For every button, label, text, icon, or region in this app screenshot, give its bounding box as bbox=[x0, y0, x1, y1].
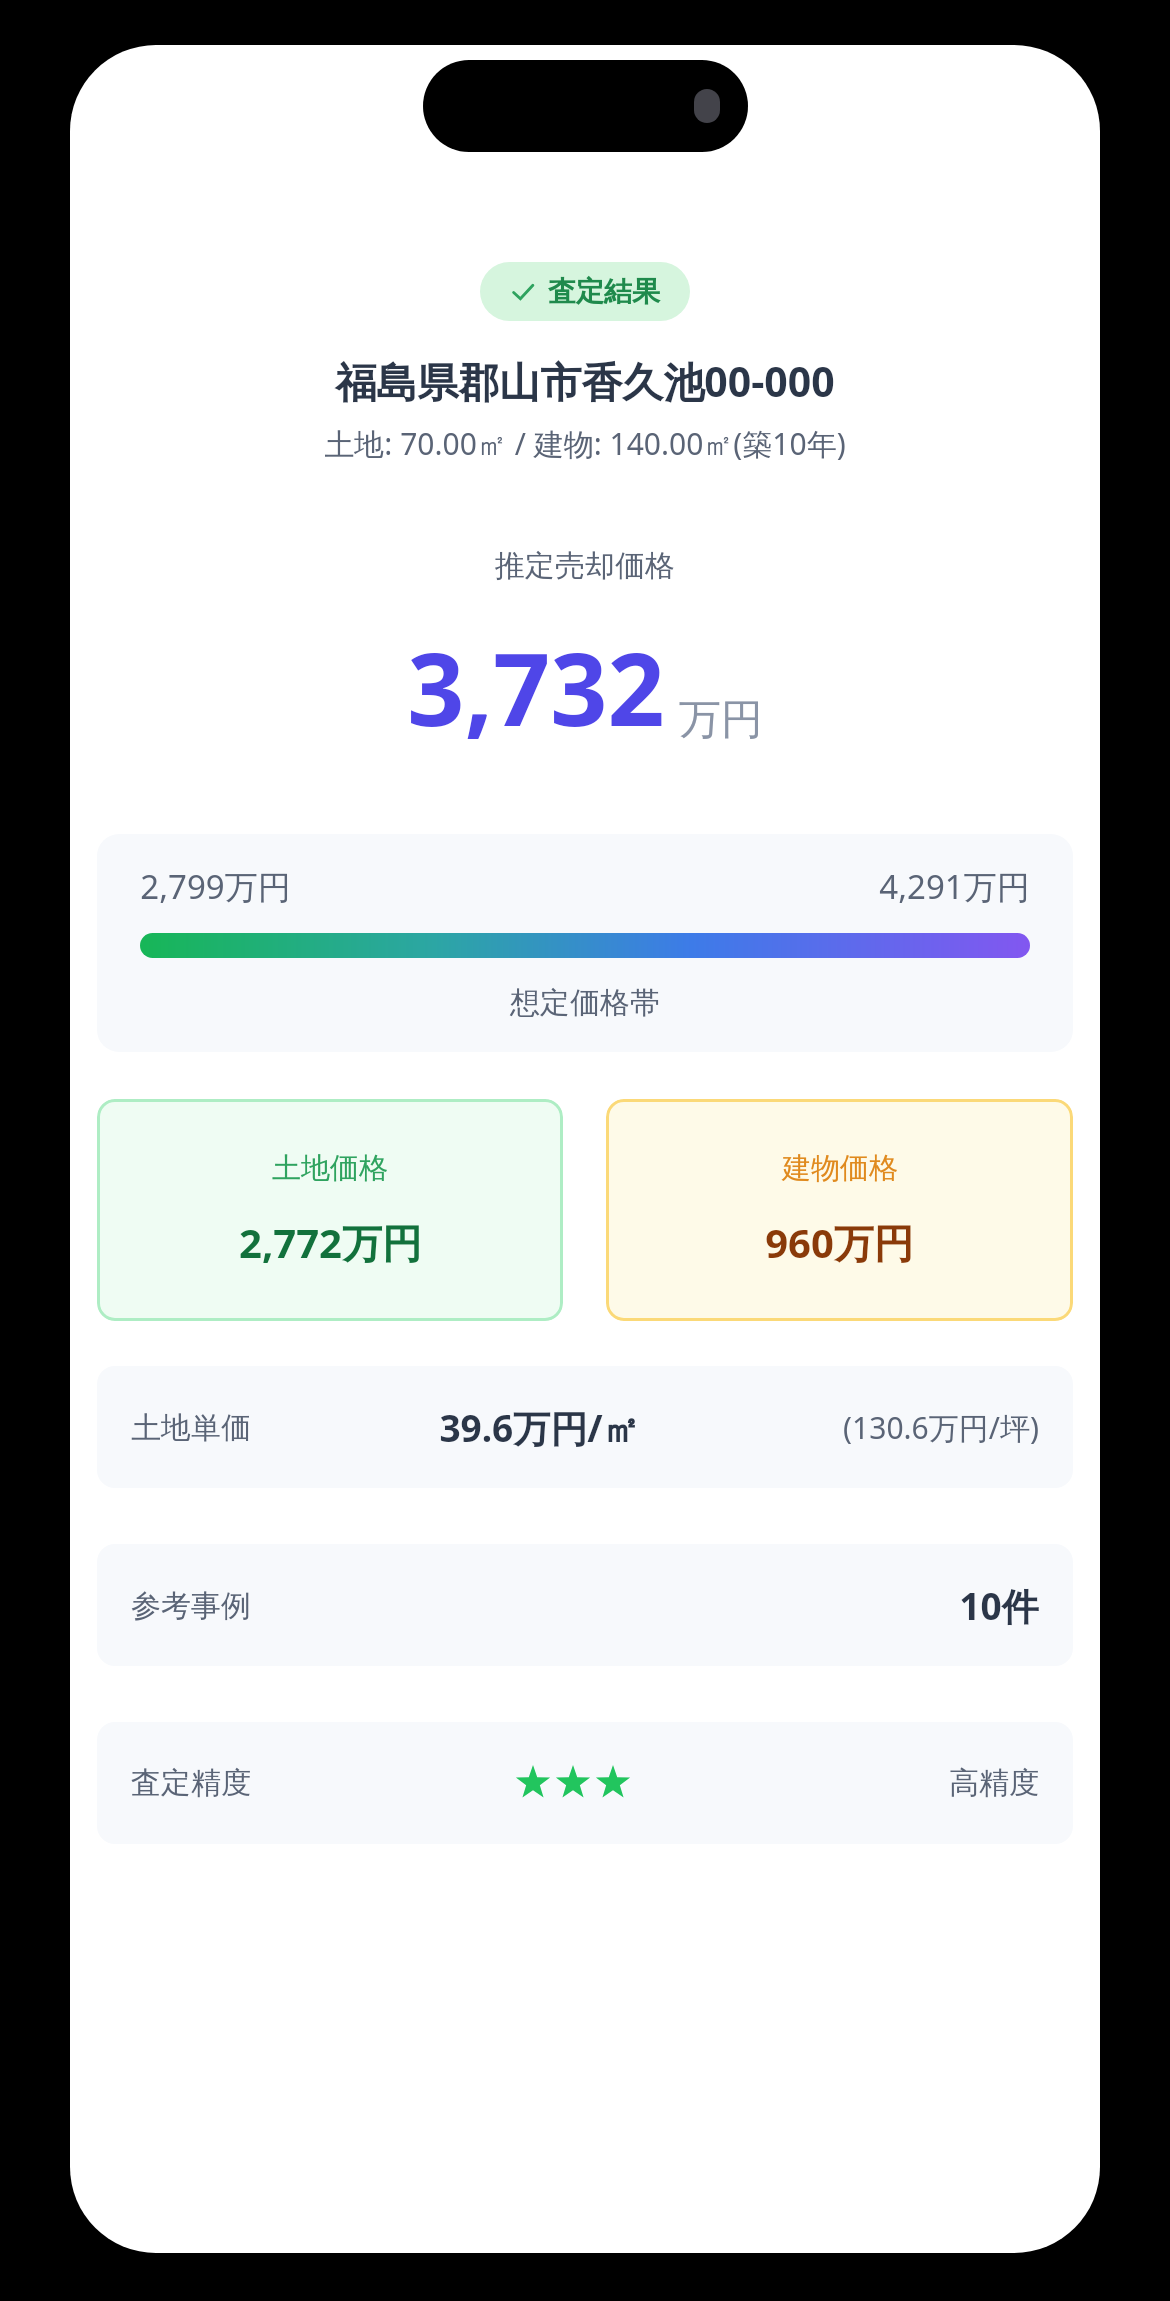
button[interactable]: 土地価格 bbox=[97, 1099, 563, 1321]
staticText: 土地単価 bbox=[131, 1409, 251, 1447]
staticText: 万円 bbox=[679, 694, 763, 747]
staticText: 福島県郡山市香久池00-000 bbox=[335, 353, 835, 409]
other: Rating star bbox=[555, 1765, 591, 1801]
other: Rating star bbox=[595, 1765, 631, 1801]
staticText: 960万円 bbox=[765, 1215, 914, 1270]
staticText: 39.6万円/㎡ bbox=[439, 1402, 640, 1453]
button[interactable]: 査定精度 bbox=[97, 1722, 1073, 1844]
staticText: 10件 bbox=[959, 1580, 1039, 1631]
staticText: 2,799万円 bbox=[140, 864, 291, 909]
staticText: 査定結果 bbox=[548, 274, 660, 309]
button[interactable]: 建物価格 bbox=[606, 1099, 1073, 1321]
staticText: 2,772万円 bbox=[239, 1215, 422, 1270]
staticText: 査定精度 bbox=[131, 1764, 251, 1802]
button[interactable]: 2,799万円 bbox=[97, 834, 1073, 1052]
staticText: 想定価格帯 bbox=[510, 984, 660, 1022]
button[interactable]: 参考事例 bbox=[97, 1544, 1073, 1666]
staticText: 高精度 bbox=[949, 1764, 1039, 1802]
staticText: 推定売却価格 bbox=[495, 547, 675, 585]
staticText: (130.6万円/坪) bbox=[843, 1407, 1039, 1448]
button[interactable]: 土地単価 bbox=[97, 1366, 1073, 1488]
staticText: 土地価格 bbox=[272, 1150, 388, 1187]
other: Rating star bbox=[515, 1765, 551, 1801]
staticText: 3,732 bbox=[407, 619, 665, 755]
staticText: 建物価格 bbox=[782, 1150, 898, 1187]
staticText: 4,291万円 bbox=[879, 864, 1030, 909]
staticText: 参考事例 bbox=[131, 1587, 251, 1625]
button[interactable]: 査定結果 bbox=[480, 262, 690, 321]
staticText: 土地: 70.00㎡ / 建物: 140.00㎡(築10年) bbox=[324, 423, 846, 464]
